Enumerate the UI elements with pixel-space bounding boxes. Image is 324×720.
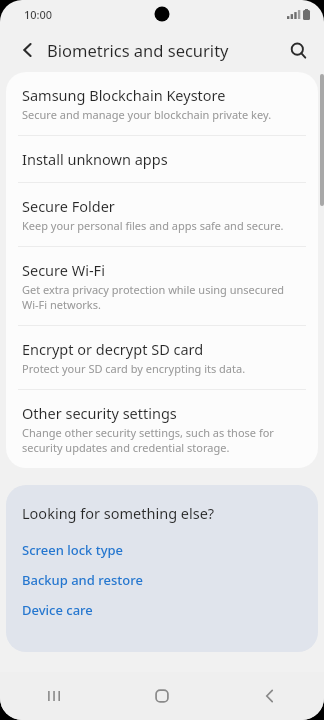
- button[interactable]: Back: [10, 32, 46, 68]
- staticText: Screen lock type: [22, 541, 124, 559]
- staticText: Keep your personal files and apps safe a…: [22, 218, 284, 233]
- staticText: Secure Wi-Fi: [22, 260, 105, 280]
- staticText: Change other security settings, such as …: [22, 425, 298, 455]
- button[interactable]: Encrypt or decrypt SD card: [6, 326, 318, 389]
- staticText: Other security settings: [22, 403, 177, 423]
- button[interactable]: Samsung Blockchain Keystore: [6, 72, 318, 135]
- button[interactable]: Home: [108, 672, 216, 720]
- staticText: Secure and manage your blockchain privat…: [22, 107, 272, 122]
- button[interactable]: Backup and restore: [22, 565, 302, 595]
- staticText: Biometrics and security: [47, 39, 229, 61]
- button[interactable]: Search: [280, 32, 316, 68]
- staticText: Samsung Blockchain Keystore: [22, 85, 226, 105]
- staticText: Install unknown apps: [22, 149, 168, 169]
- button[interactable]: Recents: [0, 672, 108, 720]
- staticText: Backup and restore: [22, 571, 143, 589]
- button[interactable]: Other security settings: [6, 390, 318, 468]
- button[interactable]: Device care: [22, 595, 302, 625]
- staticText: Device care: [22, 601, 93, 619]
- button[interactable]: Secure Folder: [6, 183, 318, 246]
- button[interactable]: Back: [216, 672, 324, 720]
- staticText: Encrypt or decrypt SD card: [22, 339, 204, 359]
- staticText: Secure Folder: [22, 196, 115, 216]
- staticText: Get extra privacy protection while using…: [22, 282, 298, 312]
- staticText: Protect your SD card by encrypting its d…: [22, 361, 246, 376]
- button[interactable]: Screen lock type: [22, 535, 302, 565]
- staticText: Looking for something else?: [22, 503, 215, 523]
- button[interactable]: Install unknown apps: [6, 136, 318, 182]
- button[interactable]: Secure Wi-Fi: [6, 247, 318, 325]
- staticText: 10:00: [24, 7, 53, 22]
